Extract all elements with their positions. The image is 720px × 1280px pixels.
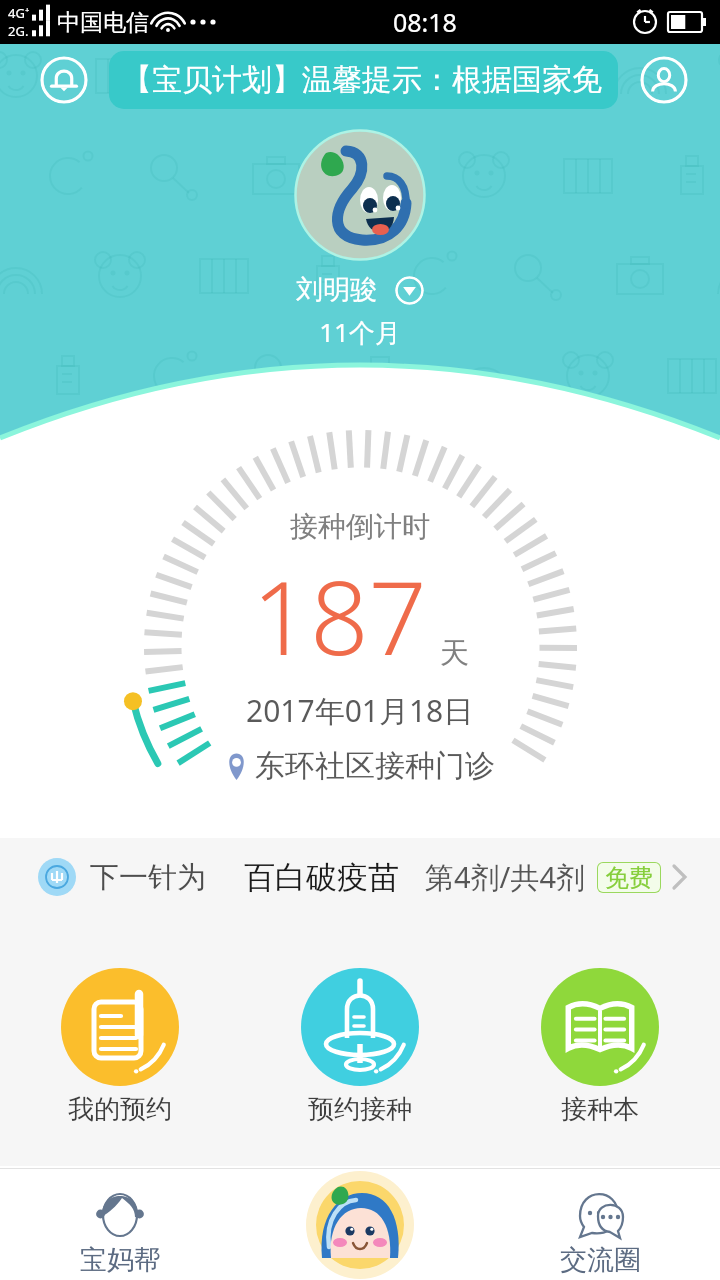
staticText: 接种倒计时 [290,509,430,544]
staticText: 东环社区接种门诊 [255,747,495,785]
staticText: 免费 [605,863,653,893]
staticText: 天 [440,635,469,672]
button[interactable]: Switch baby [395,276,424,305]
button[interactable]: Notifications [40,56,88,104]
staticText: 08:18 [393,5,457,39]
button[interactable]: 接种本 [480,968,720,1126]
staticText: 预约接种 [308,1093,412,1126]
button[interactable]: 预约接种 [240,968,480,1126]
staticText: 我的预约 [68,1093,172,1126]
button[interactable]: 下一针为 [0,838,720,916]
staticText: 中国电信 [57,8,149,37]
staticText: 交流圈 [560,1243,641,1277]
button[interactable]: Profile [640,56,688,104]
staticText: 2G. [8,22,29,40]
staticText: 刘明骏 [296,273,377,307]
staticText: 百白破疫苗 [244,858,399,897]
staticText: 第4剂/共4剂 [425,857,585,897]
staticText: 2017年01月18日 [246,690,474,731]
button[interactable]: 【宝贝计划】温馨提示：根据国家免 [109,51,618,109]
button[interactable]: 我的预约 [0,968,240,1126]
staticText: 187 [252,546,427,685]
button[interactable]: 交流圈 [480,1168,720,1280]
staticText: 4G⁺ [8,4,30,22]
staticText: 下一针为 [90,859,206,896]
staticText: 【宝贝计划】温馨提示：根据国家免 [122,61,602,99]
button[interactable]: Home [305,1170,415,1280]
staticText: 接种本 [561,1093,639,1126]
staticText: 11个月 [0,314,720,350]
button[interactable]: 宝妈帮 [0,1168,240,1280]
staticText: 宝妈帮 [80,1243,161,1277]
